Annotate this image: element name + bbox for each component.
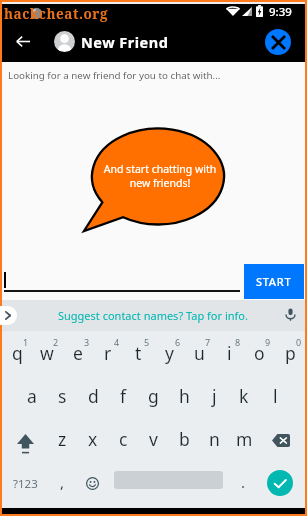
staticText: New Friend [81, 32, 169, 52]
button[interactable]: Emoji [78, 462, 107, 505]
staticText: 6 [175, 336, 181, 348]
staticText: Suggest contact names? Tap for info. [58, 308, 248, 323]
button[interactable]: d [78, 376, 108, 419]
staticText: t [135, 341, 142, 365]
staticText: . [241, 472, 246, 492]
button[interactable]: s [47, 376, 77, 419]
staticText: z [58, 427, 67, 451]
button[interactable]: o [244, 333, 274, 376]
staticText: g [148, 384, 159, 408]
button[interactable]: m [229, 419, 259, 462]
button[interactable]: z [47, 419, 77, 462]
button[interactable]: r [93, 333, 123, 376]
button[interactable]: w [32, 333, 62, 376]
staticText: 1 [23, 336, 29, 348]
button[interactable]: c [108, 419, 138, 462]
button[interactable]: y [154, 333, 184, 376]
staticText: b [179, 427, 190, 451]
staticText: 2 [53, 336, 59, 348]
button[interactable]: Suggest contact names? Tap for info. [20, 302, 285, 329]
staticText: And start chatting with new friends! [100, 162, 220, 190]
button[interactable]: u [184, 333, 214, 376]
staticText: Looking for a new friend for you to chat… [8, 69, 221, 82]
staticText: a [27, 384, 37, 408]
staticText: d [88, 384, 99, 408]
staticText: u [194, 341, 205, 365]
staticText: f [120, 384, 127, 408]
staticText: 7 [205, 336, 211, 348]
staticText: l [273, 384, 278, 408]
staticText: s [58, 384, 67, 408]
button[interactable]: Back [9, 28, 36, 55]
staticText: p [285, 341, 296, 365]
staticText: c [119, 427, 128, 451]
staticText: q [12, 341, 23, 365]
staticText: h [179, 384, 190, 408]
button[interactable]: v [138, 419, 168, 462]
button[interactable]: i [214, 333, 244, 376]
staticText: 9 [265, 336, 271, 348]
button[interactable]: f [108, 376, 138, 419]
staticText: x [88, 427, 98, 451]
button[interactable]: k [229, 376, 259, 419]
staticText: 5 [144, 336, 150, 348]
button[interactable]: Enter [267, 470, 293, 496]
staticText: 3 [84, 336, 90, 348]
button[interactable]: g [138, 376, 168, 419]
button[interactable]: h [169, 376, 199, 419]
staticText: i [227, 341, 232, 365]
staticText: START [256, 274, 292, 289]
button[interactable]: ?123 [2, 462, 49, 505]
staticText: v [149, 427, 158, 451]
button[interactable]: x [78, 419, 108, 462]
button[interactable]: q [2, 333, 32, 376]
staticText: 0 [296, 336, 302, 348]
staticText: ?123 [13, 476, 38, 492]
button[interactable]: e [63, 333, 93, 376]
staticText: e [73, 341, 83, 365]
button[interactable]: . [229, 462, 258, 505]
staticText: y [165, 341, 174, 365]
staticText: o [254, 341, 265, 365]
button[interactable]: p [275, 333, 305, 376]
staticText: j [212, 384, 217, 408]
staticText: r [104, 341, 112, 365]
staticText: , [60, 472, 65, 492]
button[interactable]: Close [265, 29, 291, 55]
button[interactable]: a [17, 376, 47, 419]
staticText: hackcheat.org [4, 5, 108, 23]
staticText: n [209, 427, 220, 451]
button[interactable]: Shift [2, 419, 47, 462]
button[interactable]: , [48, 462, 77, 505]
staticText: 9:39 [269, 4, 292, 20]
button[interactable]: n [199, 419, 229, 462]
staticText: 4 [114, 336, 120, 348]
button[interactable]: START [244, 264, 304, 299]
button[interactable]: b [169, 419, 199, 462]
button[interactable]: Expand suggestions [0, 306, 17, 325]
button[interactable]: t [123, 333, 153, 376]
staticText: w [40, 341, 54, 365]
staticText: m [236, 427, 253, 451]
staticText: 8 [235, 336, 241, 348]
button[interactable]: l [260, 376, 290, 419]
button[interactable]: Backspace [262, 419, 305, 462]
button[interactable]: j [199, 376, 229, 419]
button[interactable]: Voice input [282, 306, 299, 323]
staticText: k [239, 384, 249, 408]
